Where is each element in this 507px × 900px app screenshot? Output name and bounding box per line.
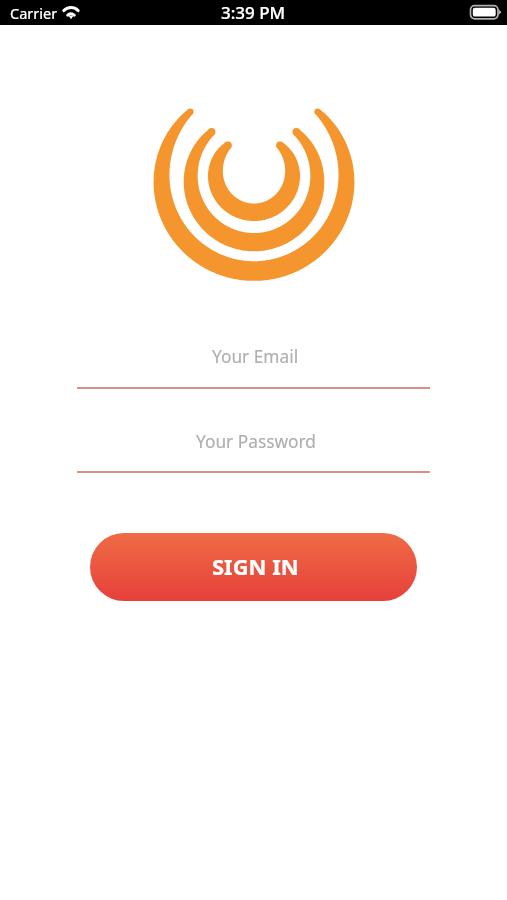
other: Wi-Fi (61, 0, 81, 25)
button[interactable]: Your Password (77, 415, 430, 469)
staticText: Your Email (212, 345, 299, 369)
staticText: Your Password (196, 430, 316, 454)
staticText: 3:39 PM (221, 1, 286, 24)
button[interactable]: SIGN IN (90, 533, 417, 601)
staticText: Carrier (10, 3, 58, 23)
button[interactable]: Your Email (77, 330, 430, 384)
staticText: SIGN IN (212, 551, 299, 581)
